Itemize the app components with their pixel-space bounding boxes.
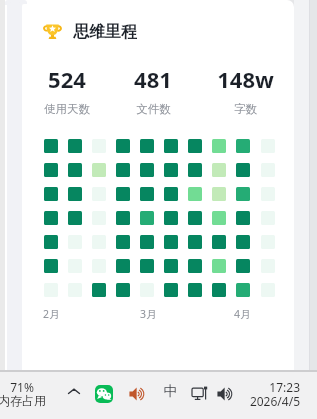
button[interactable]: 17:23	[243, 379, 300, 413]
button[interactable]: Sound	[216, 385, 234, 403]
button[interactable]: WeChat	[95, 385, 113, 403]
button[interactable]: Display	[190, 383, 210, 403]
button[interactable]: Show hidden icons	[62, 380, 86, 404]
staticText: 3月	[140, 307, 157, 321]
staticText: 17:23	[243, 379, 300, 395]
button[interactable]: Input method	[163, 383, 178, 398]
staticText: 524	[48, 64, 86, 94]
staticText: 148w	[217, 64, 274, 94]
staticText: 思维里程	[73, 22, 137, 40]
button[interactable]: Volume	[128, 385, 146, 403]
staticText: 481	[134, 64, 172, 94]
staticText: 使用天数	[44, 102, 90, 116]
staticText: 4月	[234, 307, 251, 321]
staticText: 71%	[0, 379, 47, 395]
button[interactable]: 148w	[205, 64, 285, 116]
button[interactable]: 524	[27, 64, 107, 116]
staticText: 字数	[234, 102, 257, 116]
other: Achievement trophy	[44, 23, 61, 39]
button[interactable]: 71%	[0, 379, 47, 413]
button[interactable]: Achievement trophy	[44, 22, 137, 40]
staticText: 2月	[43, 307, 60, 321]
staticText: 文件数	[136, 102, 171, 116]
button[interactable]: 481	[113, 64, 193, 116]
staticText: 中	[163, 383, 178, 398]
staticText: 内存占用	[0, 393, 47, 408]
staticText: 2026/4/5	[243, 393, 300, 409]
